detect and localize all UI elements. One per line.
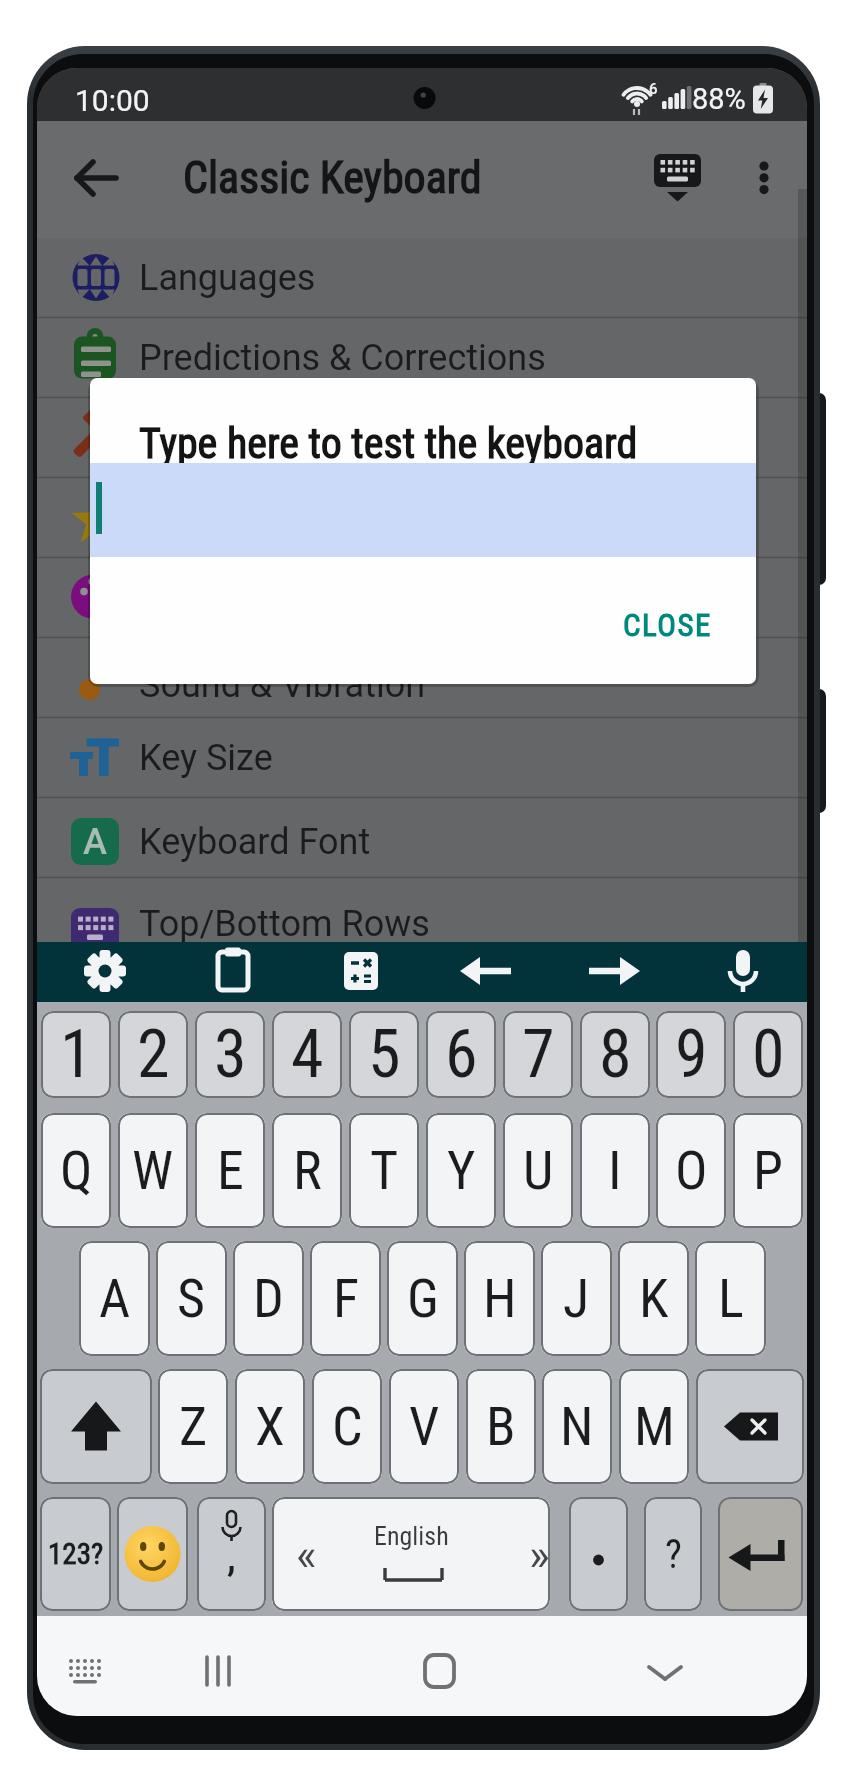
staticText: Q (60, 1139, 93, 1202)
button[interactable] (617, 1628, 707, 1713)
staticText: P (753, 1139, 783, 1202)
button[interactable]: 123? (40, 1497, 111, 1611)
button[interactable]: O (656, 1113, 726, 1228)
staticText: Sound & Vibration (139, 664, 426, 706)
staticText: A (99, 1267, 131, 1330)
button[interactable]: ? (644, 1497, 702, 1611)
button[interactable]: T (349, 1113, 419, 1228)
staticText: 10:00 (75, 83, 150, 118)
button[interactable]: H (464, 1241, 535, 1356)
staticText: 6 (445, 1016, 478, 1093)
button[interactable]: R (272, 1113, 342, 1228)
staticText: J (563, 1267, 590, 1330)
staticText: ? (665, 1531, 682, 1578)
button[interactable]: V (389, 1369, 459, 1484)
button[interactable]: C (312, 1369, 382, 1484)
button[interactable]: 6 (426, 1011, 496, 1098)
staticText: 4 (291, 1016, 324, 1093)
button[interactable]: N (542, 1369, 612, 1484)
button[interactable]: 4 (272, 1011, 342, 1098)
button[interactable] (297, 942, 425, 1002)
button[interactable]: L (695, 1241, 766, 1356)
staticText: Classic Keyboard (183, 152, 482, 204)
staticText: English (374, 1521, 449, 1551)
button[interactable]: I (580, 1113, 650, 1228)
staticText: B (486, 1395, 516, 1458)
button[interactable]: B (466, 1369, 536, 1484)
button[interactable]: 7 (503, 1011, 573, 1098)
button[interactable]: Q (41, 1113, 111, 1228)
button[interactable] (117, 1497, 188, 1611)
button[interactable]: 9 (656, 1011, 726, 1098)
button[interactable]: Y (426, 1113, 496, 1228)
button[interactable]: 2 (118, 1011, 188, 1098)
staticText: 7 (522, 1016, 555, 1093)
button[interactable]: P (733, 1113, 803, 1228)
button[interactable] (37, 558, 807, 638)
button[interactable] (37, 318, 807, 398)
button[interactable]: 1 (41, 1011, 111, 1098)
staticText: F (333, 1267, 359, 1330)
button[interactable] (37, 718, 807, 798)
button[interactable] (681, 942, 807, 1002)
staticText: 2 (137, 1016, 170, 1093)
staticText: Top/Bottom Rows (139, 903, 430, 945)
button[interactable] (37, 398, 807, 478)
staticText: N (560, 1395, 594, 1458)
button[interactable]: 8 (580, 1011, 650, 1098)
staticText: Key Size (139, 737, 273, 779)
button[interactable]: A (79, 1241, 150, 1356)
staticText: U (523, 1139, 554, 1202)
button[interactable]: X (235, 1369, 305, 1484)
button[interactable] (387, 1628, 477, 1713)
button[interactable] (169, 942, 297, 1002)
button[interactable]: E (195, 1113, 265, 1228)
staticText: » (529, 1529, 550, 1581)
button[interactable] (718, 1497, 803, 1611)
button[interactable]: S (156, 1241, 227, 1356)
button[interactable]: CLOSE (607, 590, 727, 660)
staticText: M (634, 1395, 675, 1458)
button[interactable] (37, 478, 807, 558)
button[interactable]: G (387, 1241, 458, 1356)
button[interactable] (37, 638, 807, 718)
staticText: A (83, 821, 107, 863)
staticText: 1 (60, 1016, 93, 1093)
button[interactable] (47, 1628, 137, 1713)
button[interactable]: D (233, 1241, 304, 1356)
staticText: T (370, 1139, 399, 1202)
button[interactable] (727, 138, 797, 218)
button[interactable] (37, 238, 807, 318)
button[interactable] (569, 1497, 628, 1611)
button[interactable]: 0 (733, 1011, 803, 1098)
button[interactable]: K (618, 1241, 689, 1356)
button[interactable]: W (118, 1113, 188, 1228)
button[interactable] (637, 138, 717, 218)
button[interactable]: 3 (195, 1011, 265, 1098)
button[interactable] (90, 463, 756, 557)
staticText: O (675, 1139, 708, 1202)
button[interactable]: J (541, 1241, 612, 1356)
staticText: 6 (649, 80, 658, 98)
button[interactable]: Z (158, 1369, 228, 1484)
button[interactable] (553, 942, 681, 1002)
staticText: E (217, 1139, 244, 1202)
staticText: Type here to test the keyboard (139, 419, 638, 468)
button[interactable]: , (197, 1497, 266, 1611)
button[interactable]: 5 (349, 1011, 419, 1098)
button[interactable] (57, 138, 137, 218)
button[interactable] (40, 1369, 152, 1484)
button[interactable] (696, 1369, 804, 1484)
staticText: 8 (599, 1016, 632, 1093)
button[interactable] (425, 942, 553, 1002)
button[interactable] (41, 942, 169, 1002)
button[interactable] (37, 878, 807, 958)
staticText: 0 (752, 1016, 785, 1093)
button[interactable] (177, 1628, 267, 1713)
button[interactable]: F (310, 1241, 381, 1356)
button[interactable] (272, 1497, 550, 1611)
button[interactable]: M (619, 1369, 689, 1484)
staticText: « (296, 1529, 317, 1581)
button[interactable] (37, 798, 807, 878)
button[interactable]: U (503, 1113, 573, 1228)
